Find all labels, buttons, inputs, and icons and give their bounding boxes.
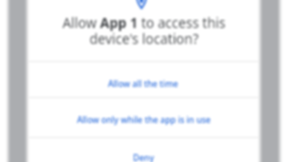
staticText: Deny (133, 152, 154, 162)
staticText: Allow only while the app is in use (77, 114, 211, 126)
staticText: device's location? (0, 30, 288, 47)
button[interactable]: Deny (27, 138, 260, 162)
button[interactable]: Allow all the time (27, 62, 260, 97)
staticText: Allow all the time (108, 78, 179, 90)
staticText: Allow App 1 to access this (0, 14, 288, 31)
button[interactable]: Allow only while the app is in use (27, 98, 260, 137)
